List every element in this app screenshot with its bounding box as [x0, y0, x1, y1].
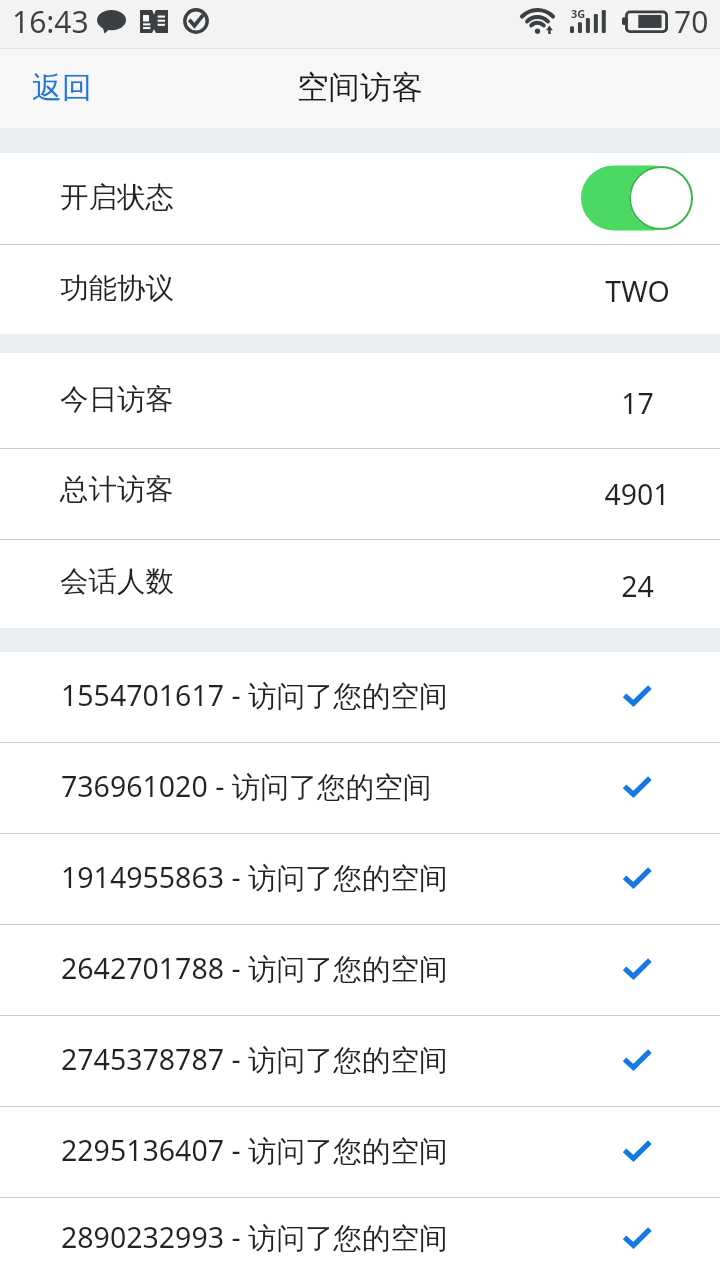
staticText: 开启状态 — [60, 180, 174, 216]
staticText: 2745378787 - 访问了您的空间 — [61, 1040, 448, 1079]
staticText: 今日访客 — [60, 382, 174, 418]
staticText: 1914955863 - 访问了您的空间 — [61, 858, 448, 897]
button[interactable]: Toggle on — [581, 165, 693, 231]
button[interactable]: 2295136407 - 访问了您的空间 — [0, 1107, 720, 1197]
button[interactable]: 1914955863 - 访问了您的空间 — [0, 834, 720, 924]
button[interactable]: 返回 — [0, 49, 124, 127]
staticText: 17 — [621, 384, 654, 423]
staticText: 空间访客 — [297, 68, 423, 108]
staticText: 736961020 - 访问了您的空间 — [61, 767, 432, 806]
staticText: 3G — [571, 6, 586, 21]
button[interactable]: 会话人数 — [0, 540, 720, 628]
button[interactable]: 2890232993 - 访问了您的空间 — [0, 1198, 720, 1280]
button[interactable]: 总计访客 — [0, 449, 720, 539]
staticText: 70 — [674, 1, 709, 42]
button[interactable]: 功能协议 — [0, 245, 720, 334]
staticText: 2642701788 - 访问了您的空间 — [61, 949, 448, 988]
staticText: TWO — [605, 272, 670, 311]
staticText: 24 — [621, 567, 654, 606]
button[interactable]: 2642701788 - 访问了您的空间 — [0, 925, 720, 1015]
staticText: 会话人数 — [60, 564, 174, 600]
staticText: 总计访客 — [60, 472, 174, 508]
staticText: 功能协议 — [60, 271, 174, 307]
staticText: 2890232993 - 访问了您的空间 — [61, 1218, 448, 1257]
staticText: 返回 — [32, 69, 92, 107]
button[interactable]: 2745378787 - 访问了您的空间 — [0, 1016, 720, 1106]
button[interactable]: 1554701617 - 访问了您的空间 — [0, 652, 720, 742]
button[interactable]: 736961020 - 访问了您的空间 — [0, 743, 720, 833]
staticText: 1554701617 - 访问了您的空间 — [61, 676, 448, 715]
staticText: 4901 — [604, 475, 670, 514]
button[interactable]: 今日访客 — [0, 353, 720, 448]
staticText: 2295136407 - 访问了您的空间 — [61, 1131, 448, 1170]
staticText: 16:43 — [12, 1, 89, 42]
button[interactable]: 开启状态 — [0, 153, 720, 244]
